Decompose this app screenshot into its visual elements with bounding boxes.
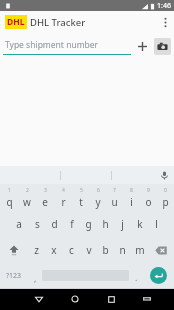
staticText: h — [102, 217, 109, 231]
button[interactable]: d — [46, 211, 63, 237]
staticText: 1:46 — [157, 1, 171, 11]
button[interactable]: j — [114, 211, 131, 237]
staticText: Type shipment number — [5, 39, 99, 51]
staticText: DHL — [7, 16, 25, 28]
button[interactable]: 6 — [89, 184, 106, 211]
button[interactable]: 3 — [36, 184, 54, 211]
staticText: 7 — [113, 187, 116, 194]
staticText: 2 — [26, 187, 29, 194]
button[interactable]: m — [131, 237, 148, 263]
button[interactable]: ?123 — [0, 263, 28, 288]
staticText: 1 — [8, 187, 11, 194]
button[interactable]: k — [131, 211, 148, 237]
button[interactable]: Scan barcode — [154, 38, 171, 55]
button[interactable]: b — [97, 237, 114, 263]
staticText: ?123 — [6, 271, 22, 281]
staticText: DHL Tracker — [30, 16, 86, 29]
staticText: t — [79, 195, 83, 209]
button[interactable]: Hide keyboard — [129, 288, 165, 310]
button[interactable]: 2 — [18, 184, 36, 211]
button[interactable]: Add shipment — [134, 38, 151, 55]
staticText: x — [51, 243, 57, 257]
staticText: . — [135, 271, 138, 283]
button[interactable]: l — [148, 211, 165, 237]
staticText: 4 — [62, 187, 65, 194]
button[interactable]: Backspace — [148, 237, 174, 263]
button[interactable]: f — [63, 211, 80, 237]
staticText: m — [135, 243, 145, 257]
staticText: 0 — [164, 187, 167, 194]
button[interactable]: Enter — [150, 267, 167, 284]
button[interactable]: 8 — [123, 184, 140, 211]
button[interactable]: Shift — [0, 237, 27, 263]
button[interactable]: 9 — [140, 184, 157, 211]
staticText: l — [155, 217, 158, 231]
button[interactable]: Recent apps — [93, 288, 129, 310]
button[interactable]: 1 — [0, 184, 18, 211]
staticText: 9 — [147, 187, 150, 194]
button[interactable]: Type shipment number — [3, 38, 131, 55]
button[interactable]: g — [80, 211, 97, 237]
staticText: 8 — [130, 187, 133, 194]
staticText: s — [35, 217, 40, 231]
button[interactable]: Home — [57, 288, 93, 310]
staticText: i — [130, 195, 133, 209]
button[interactable]: , — [28, 263, 42, 288]
button[interactable]: 4 — [54, 184, 72, 211]
button[interactable]: a — [10, 211, 28, 237]
staticText: z — [34, 243, 39, 257]
button[interactable]: x — [45, 237, 63, 263]
staticText: k — [137, 217, 143, 231]
staticText: c — [69, 243, 74, 257]
button[interactable]: v — [80, 237, 97, 263]
staticText: j — [121, 217, 124, 231]
staticText: , — [34, 272, 37, 284]
staticText: b — [102, 243, 109, 257]
staticText: e — [42, 195, 48, 209]
staticText: d — [51, 217, 58, 231]
button[interactable]: n — [114, 237, 131, 263]
button[interactable]: s — [28, 211, 46, 237]
button[interactable]: More options — [156, 11, 174, 33]
button[interactable]: c — [63, 237, 80, 263]
button[interactable]: h — [97, 211, 114, 237]
staticText: n — [119, 243, 126, 257]
button[interactable]: 0 — [157, 184, 174, 211]
button[interactable]: 7 — [106, 184, 123, 211]
staticText: f — [70, 217, 74, 231]
button[interactable]: Voice input — [154, 166, 174, 184]
staticText: v — [86, 243, 92, 257]
staticText: 5 — [80, 187, 83, 194]
staticText: q — [6, 195, 13, 209]
button[interactable]: z — [27, 237, 45, 263]
staticText: w — [23, 195, 31, 209]
staticText: p — [162, 195, 169, 209]
staticText: r — [61, 195, 66, 209]
staticText: 6 — [97, 187, 100, 194]
staticText: u — [111, 195, 118, 209]
button[interactable]: Back — [21, 288, 57, 310]
staticText: y — [95, 195, 101, 209]
staticText: 3 — [44, 187, 47, 194]
staticText: g — [85, 217, 92, 231]
staticText: a — [16, 217, 22, 231]
button[interactable]: . — [129, 263, 143, 288]
staticText: o — [145, 195, 152, 209]
button[interactable]: 5 — [72, 184, 89, 211]
